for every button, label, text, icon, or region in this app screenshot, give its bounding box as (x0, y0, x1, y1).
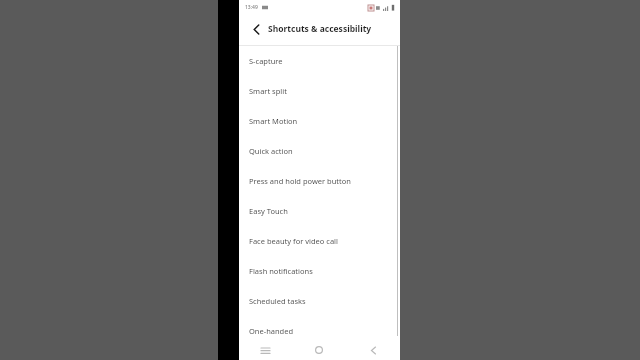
staticText: 13:49 (245, 4, 258, 11)
staticText: S-capture (249, 56, 283, 66)
staticText: Flash notifications (249, 266, 313, 276)
button[interactable]: Scheduled tasks (239, 286, 400, 316)
button[interactable]: Back (249, 22, 263, 36)
button[interactable]: Quick action (239, 136, 400, 166)
staticText: Smart Motion (249, 116, 298, 126)
staticText: Press and hold power button (249, 176, 351, 186)
button[interactable]: Face beauty for video call (239, 226, 400, 256)
button[interactable]: Back (346, 340, 400, 360)
button[interactable]: S-capture (239, 46, 400, 76)
button[interactable]: Flash notifications (239, 256, 400, 286)
button[interactable]: Home (292, 340, 346, 360)
staticText: Scheduled tasks (249, 296, 306, 306)
staticText: One-handed (249, 326, 294, 336)
button[interactable]: One-handed (239, 316, 400, 346)
staticText: Smart split (249, 86, 287, 96)
button[interactable]: Smart Motion (239, 106, 400, 136)
button[interactable]: Press and hold power button (239, 166, 400, 196)
button[interactable]: Smart split (239, 76, 400, 106)
button[interactable]: Recents (239, 340, 292, 360)
staticText: Easy Touch (249, 206, 288, 216)
staticText: Face beauty for video call (249, 236, 338, 246)
button[interactable]: Easy Touch (239, 196, 400, 226)
staticText: Quick action (249, 146, 293, 156)
staticText: Shortcuts & accessibility (268, 23, 372, 35)
